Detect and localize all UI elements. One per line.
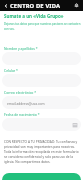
button[interactable] bbox=[2, 118, 81, 131]
staticText: Correo electrónico * bbox=[4, 90, 37, 95]
staticText: Fecha de nacimiento * bbox=[4, 112, 40, 117]
button[interactable]: Enviar bbox=[2, 173, 81, 180]
staticText: CENTRO DE VIDA bbox=[10, 2, 61, 10]
staticText: CON RESPECTO A TU PRIVACIDAD: Tu confian… bbox=[4, 140, 80, 164]
staticText: email.address@usa.com bbox=[7, 101, 78, 105]
staticText: Celular * bbox=[4, 68, 18, 73]
staticText: Sumate a un «Vida Grupo» bbox=[4, 13, 64, 19]
button[interactable]: Notifications bbox=[72, 1, 81, 10]
button[interactable]: Back bbox=[2, 2, 10, 10]
staticText: Nombre y apellidos * bbox=[4, 46, 38, 51]
button[interactable]: email.address@usa.com bbox=[2, 96, 81, 109]
staticText: Dejanos tus datos para que nuestros past… bbox=[4, 22, 81, 30]
